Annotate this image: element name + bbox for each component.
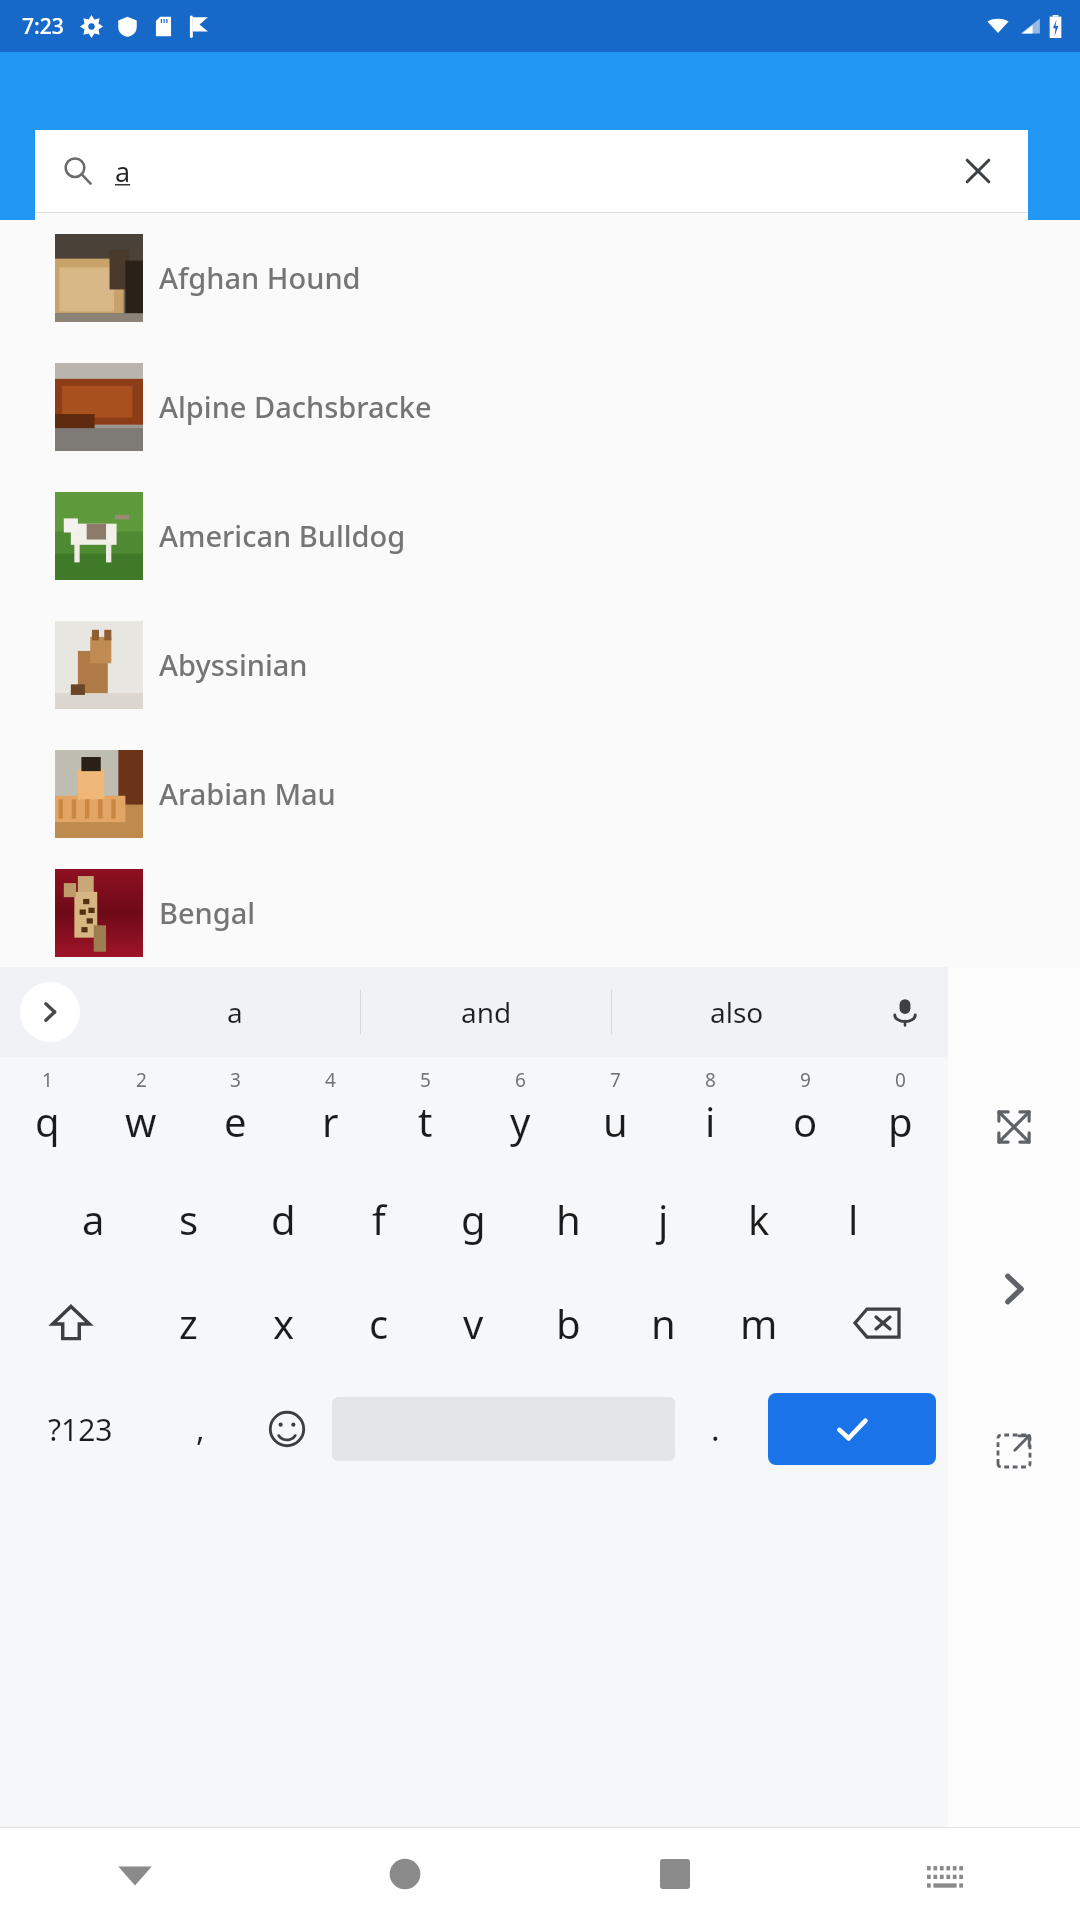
staticText: i bbox=[705, 1094, 716, 1148]
button[interactable]: Back bbox=[0, 1828, 270, 1920]
button[interactable]: Recents bbox=[540, 1828, 810, 1920]
staticText: a bbox=[115, 153, 131, 190]
button[interactable]: 7 bbox=[568, 1063, 663, 1167]
button[interactable]: a bbox=[110, 967, 360, 1057]
button[interactable]: x bbox=[236, 1271, 331, 1375]
button[interactable]: Shift bbox=[0, 1271, 141, 1375]
button[interactable]: c bbox=[331, 1271, 426, 1375]
staticText: Arabian Mau bbox=[159, 774, 336, 813]
button[interactable]: Abyssinian bbox=[35, 600, 1028, 729]
staticText: Abyssinian bbox=[159, 645, 308, 684]
button[interactable]: 3 bbox=[188, 1063, 283, 1167]
button[interactable]: Done bbox=[768, 1393, 936, 1465]
button[interactable]: American Bulldog bbox=[35, 471, 1028, 600]
button[interactable]: 9 bbox=[758, 1063, 853, 1167]
button[interactable]: Float keyboard bbox=[974, 1411, 1054, 1491]
button[interactable]: 4 bbox=[283, 1063, 378, 1167]
button[interactable]: 2 bbox=[94, 1063, 188, 1167]
button[interactable]: , bbox=[160, 1375, 241, 1483]
button[interactable]: 8 bbox=[663, 1063, 758, 1167]
staticText: e bbox=[224, 1094, 247, 1148]
button[interactable]: 1 bbox=[0, 1063, 94, 1167]
staticText: a bbox=[82, 1192, 105, 1246]
button[interactable]: Afghan Hound bbox=[35, 213, 1028, 342]
staticText: s bbox=[179, 1192, 199, 1246]
staticText: z bbox=[179, 1296, 198, 1350]
staticText: a bbox=[227, 993, 243, 1031]
staticText: k bbox=[748, 1192, 770, 1246]
staticText: v bbox=[463, 1296, 484, 1350]
staticText: w bbox=[125, 1094, 157, 1148]
staticText: Alpine Dachsbracke bbox=[159, 387, 432, 426]
button[interactable]: Next bbox=[974, 1249, 1054, 1329]
staticText: u bbox=[603, 1094, 628, 1148]
staticText: 8 bbox=[705, 1067, 716, 1093]
button[interactable]: Arabian Mau bbox=[35, 729, 1028, 858]
staticText: t bbox=[418, 1094, 433, 1148]
staticText: h bbox=[556, 1192, 581, 1246]
staticText: 7 bbox=[610, 1067, 621, 1093]
button[interactable]: Home bbox=[270, 1828, 540, 1920]
button[interactable]: h bbox=[521, 1167, 616, 1271]
button[interactable]: b bbox=[521, 1271, 616, 1375]
button[interactable]: Bengal bbox=[35, 858, 1028, 967]
button[interactable]: d bbox=[236, 1167, 331, 1271]
button[interactable]: Backspace bbox=[806, 1271, 948, 1375]
staticText: 0 bbox=[895, 1067, 906, 1093]
staticText: r bbox=[322, 1094, 339, 1148]
button[interactable]: a bbox=[46, 1167, 141, 1271]
button[interactable]: ?123 bbox=[0, 1375, 160, 1483]
button[interactable]: and bbox=[361, 967, 611, 1057]
staticText: 5 bbox=[420, 1067, 431, 1093]
button[interactable]: g bbox=[426, 1167, 521, 1271]
button[interactable]: Voice input bbox=[862, 967, 948, 1057]
staticText: 3 bbox=[230, 1067, 241, 1093]
staticText: and bbox=[461, 993, 512, 1031]
staticText: . bbox=[711, 1407, 720, 1451]
staticText: l bbox=[848, 1192, 859, 1246]
staticText: American Bulldog bbox=[159, 516, 406, 555]
staticText: 1 bbox=[42, 1067, 53, 1093]
staticText: Afghan Hound bbox=[159, 258, 361, 297]
button[interactable]: l bbox=[806, 1167, 901, 1271]
button[interactable]: 6 bbox=[473, 1063, 568, 1167]
staticText: 6 bbox=[515, 1067, 526, 1093]
staticText: g bbox=[461, 1192, 486, 1246]
button[interactable]: Emoji bbox=[241, 1375, 332, 1483]
button[interactable]: f bbox=[331, 1167, 426, 1271]
button[interactable]: a bbox=[63, 130, 1002, 212]
button[interactable]: v bbox=[426, 1271, 521, 1375]
staticText: 9 bbox=[800, 1067, 811, 1093]
button[interactable]: Switch keyboard bbox=[810, 1828, 1080, 1920]
button[interactable]: s bbox=[141, 1167, 236, 1271]
button[interactable]: m bbox=[711, 1271, 806, 1375]
button[interactable]: n bbox=[616, 1271, 711, 1375]
button[interactable]: Resize keyboard bbox=[974, 1087, 1054, 1167]
staticText: 7:23 bbox=[22, 12, 64, 41]
staticText: p bbox=[888, 1094, 913, 1148]
staticText: f bbox=[372, 1192, 386, 1246]
button[interactable]: 0 bbox=[853, 1063, 948, 1167]
button[interactable]: 5 bbox=[378, 1063, 473, 1167]
staticText: o bbox=[793, 1094, 818, 1148]
button[interactable]: z bbox=[141, 1271, 236, 1375]
staticText: c bbox=[369, 1296, 389, 1350]
staticText: j bbox=[658, 1192, 669, 1246]
staticText: 2 bbox=[136, 1067, 147, 1093]
staticText: b bbox=[556, 1296, 581, 1350]
staticText: , bbox=[196, 1407, 205, 1451]
button[interactable]: Expand suggestions bbox=[20, 982, 80, 1042]
staticText: y bbox=[510, 1094, 531, 1148]
button[interactable]: j bbox=[616, 1167, 711, 1271]
staticText: n bbox=[651, 1296, 676, 1350]
button[interactable]: Alpine Dachsbracke bbox=[35, 342, 1028, 471]
staticText: 4 bbox=[325, 1067, 336, 1093]
button[interactable]: Clear search bbox=[954, 147, 1002, 195]
staticText: m bbox=[740, 1296, 778, 1350]
button[interactable]: . bbox=[675, 1375, 756, 1483]
staticText: also bbox=[710, 993, 764, 1031]
button[interactable]: also bbox=[612, 967, 862, 1057]
button[interactable]: k bbox=[711, 1167, 806, 1271]
staticText: d bbox=[271, 1192, 296, 1246]
